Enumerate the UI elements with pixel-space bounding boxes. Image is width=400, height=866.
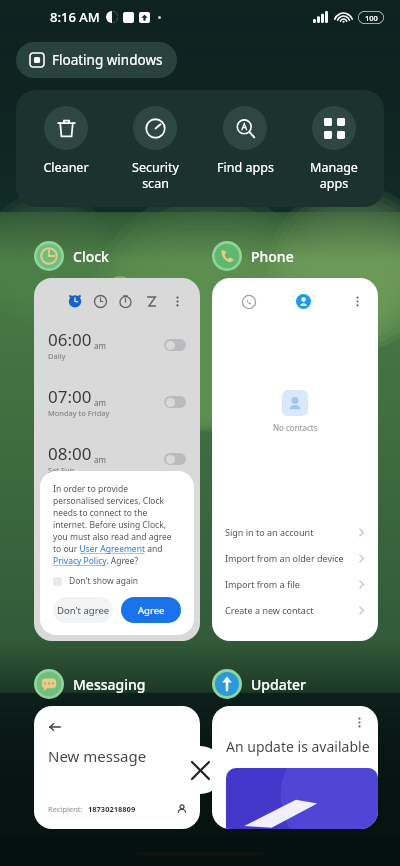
button[interactable]: Don't agree <box>53 597 113 623</box>
staticText: Import from an older device <box>225 552 344 564</box>
staticText: Messaging <box>73 675 146 694</box>
staticText: Clock <box>73 247 109 266</box>
staticText: 18730218809 <box>88 804 136 814</box>
button[interactable]: Import from an older device <box>212 545 378 571</box>
staticText: Find apps <box>217 159 274 176</box>
button[interactable]: An update is available <box>212 706 378 829</box>
staticText: Monday to Friday <box>48 408 110 418</box>
button[interactable]: Find apps <box>206 104 284 178</box>
staticText: 06:00 <box>48 328 92 351</box>
button[interactable]: Create a new contact <box>212 597 378 623</box>
staticText: Agree <box>138 604 165 617</box>
staticText: 100 <box>365 13 378 23</box>
staticText: Daily <box>48 351 66 361</box>
staticText: Updater <box>251 675 307 694</box>
button[interactable]: Import from a file <box>212 571 378 597</box>
button[interactable] <box>164 453 186 465</box>
staticText: Sign in to an account <box>225 526 314 538</box>
button[interactable]: New message <box>34 706 200 829</box>
staticText: Floating windows <box>52 51 163 69</box>
staticText: 07:00 <box>48 385 92 408</box>
button[interactable]: Sign in to an account <box>212 519 378 545</box>
staticText: am <box>94 397 106 408</box>
staticText: An update is available <box>226 737 370 756</box>
staticText: Cleaner <box>43 159 89 176</box>
staticText: Import from a file <box>225 578 300 590</box>
staticText: 8:16 AM <box>50 8 100 26</box>
staticText: No contacts <box>273 422 318 433</box>
staticText: Security scan <box>132 159 179 191</box>
button[interactable]: Cleaner <box>27 104 105 178</box>
staticText: Manage apps <box>310 159 358 191</box>
staticText: Sat Sun <box>48 465 75 475</box>
staticText: Recipient: <box>48 804 83 814</box>
button[interactable] <box>53 577 62 586</box>
button[interactable] <box>164 339 186 351</box>
button[interactable]: Agree <box>121 597 181 623</box>
staticText: 08:00 <box>48 442 92 465</box>
button[interactable]: 06:00 <box>34 278 200 641</box>
staticText: Don't show again <box>69 575 139 587</box>
button[interactable]: Security scan <box>116 104 194 193</box>
staticText: In order to provide personalised service… <box>53 483 181 567</box>
button[interactable]: Close all <box>176 746 224 794</box>
staticText: am <box>94 340 106 351</box>
staticText: am <box>94 454 106 465</box>
button[interactable]: Floating windows <box>16 42 177 78</box>
staticText: Create a new contact <box>225 604 314 616</box>
staticText: Phone <box>251 247 294 266</box>
staticText: New message <box>48 746 147 766</box>
button[interactable]: Manage apps <box>295 104 373 193</box>
button[interactable]: No contacts <box>212 278 378 641</box>
staticText: Don't agree <box>57 604 110 617</box>
button[interactable] <box>164 396 186 408</box>
